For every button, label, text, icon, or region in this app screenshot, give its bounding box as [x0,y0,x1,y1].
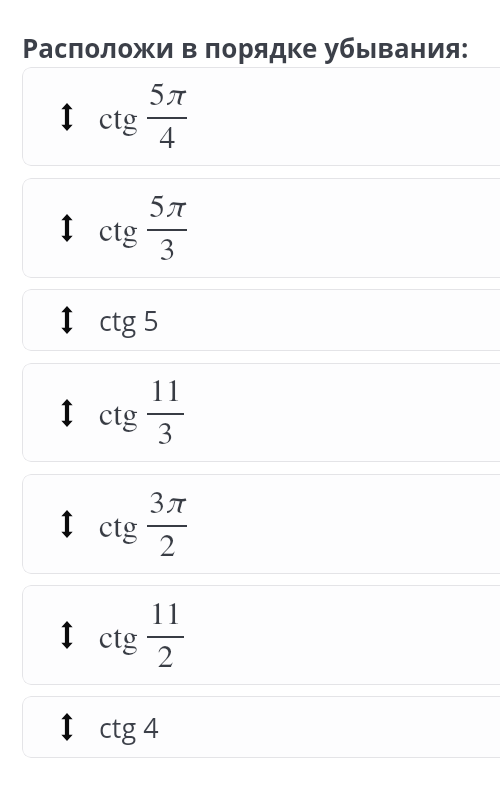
other: Drag to reorder [61,399,73,427]
staticText: 3 [157,410,174,453]
staticText: 11 [149,590,182,633]
staticText: 5π [149,71,185,114]
staticText: ctg [99,503,139,546]
staticText: 11 [149,367,182,410]
staticText: ctg [99,95,139,138]
other: Drag to reorder [61,306,73,334]
staticText: 2 [159,522,176,565]
other: Drag to reorder [61,621,73,649]
staticText: Расположи в порядке убывания: [22,30,469,65]
staticText: ctg [99,391,139,434]
staticText: 4 [159,114,176,157]
staticText: ctg [99,207,139,250]
staticText: 3π [149,479,185,522]
staticText: ctg [99,614,139,657]
other: Drag to reorder [61,713,73,741]
staticText: 3 [159,226,176,269]
other: Drag to reorder [61,103,73,131]
button[interactable]: Drag to reorder [22,696,500,758]
staticText: ctg 5 [99,302,159,339]
other: Drag to reorder [61,510,73,538]
staticText: 5π [149,183,185,226]
button[interactable]: Drag to reorder [22,474,500,574]
button[interactable]: Drag to reorder [22,289,500,351]
staticText: ctg 4 [99,709,159,746]
staticText: 2 [157,633,174,676]
button[interactable]: Drag to reorder [22,67,500,166]
button[interactable]: Drag to reorder [22,363,500,462]
button[interactable]: Drag to reorder [22,585,500,685]
other: Drag to reorder [61,214,73,242]
button[interactable]: Drag to reorder [22,178,500,278]
